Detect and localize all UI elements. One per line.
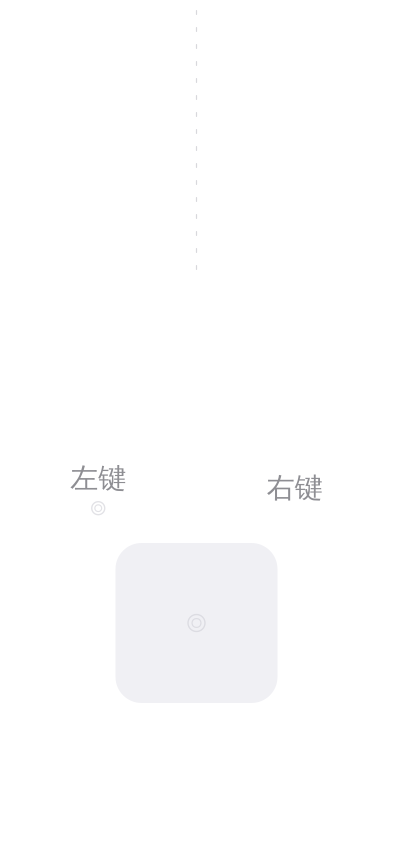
button[interactable]: 左键 [0,0,196,852]
staticText: 左键 [70,461,126,496]
button[interactable]: 右键 [196,0,393,852]
staticText: 右键 [267,471,323,505]
